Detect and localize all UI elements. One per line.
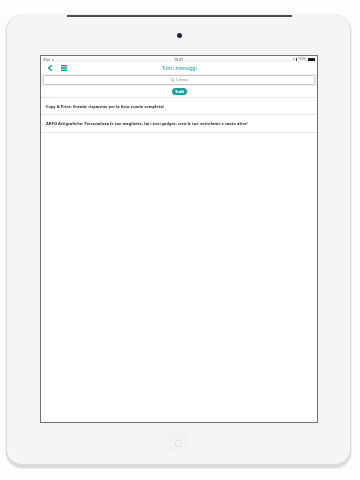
button[interactable]: Home <box>167 431 189 453</box>
button[interactable]: Back <box>44 62 56 74</box>
staticText: 10:47 <box>174 57 184 62</box>
button[interactable]: AKPO Artigrafiche: Personalizza le tue m… <box>41 115 317 132</box>
staticText: Tutti <box>175 89 185 95</box>
staticText: Copy & Print: Grande risparmio per la li… <box>46 104 164 109</box>
staticText: AKPO Artigrafiche: Personalizza le tue m… <box>46 121 248 126</box>
button[interactable]: Tutti <box>172 88 187 95</box>
staticText: 100% <box>298 57 307 61</box>
staticText: Cerca <box>176 77 188 83</box>
staticText: Tutti i messaggi <box>162 65 197 71</box>
button[interactable]: Copy & Print: Grande risparmio per la li… <box>41 98 317 114</box>
staticText: iPad <box>43 57 51 62</box>
button[interactable]: Cerca <box>43 75 315 85</box>
button[interactable]: Message list <box>58 62 70 74</box>
